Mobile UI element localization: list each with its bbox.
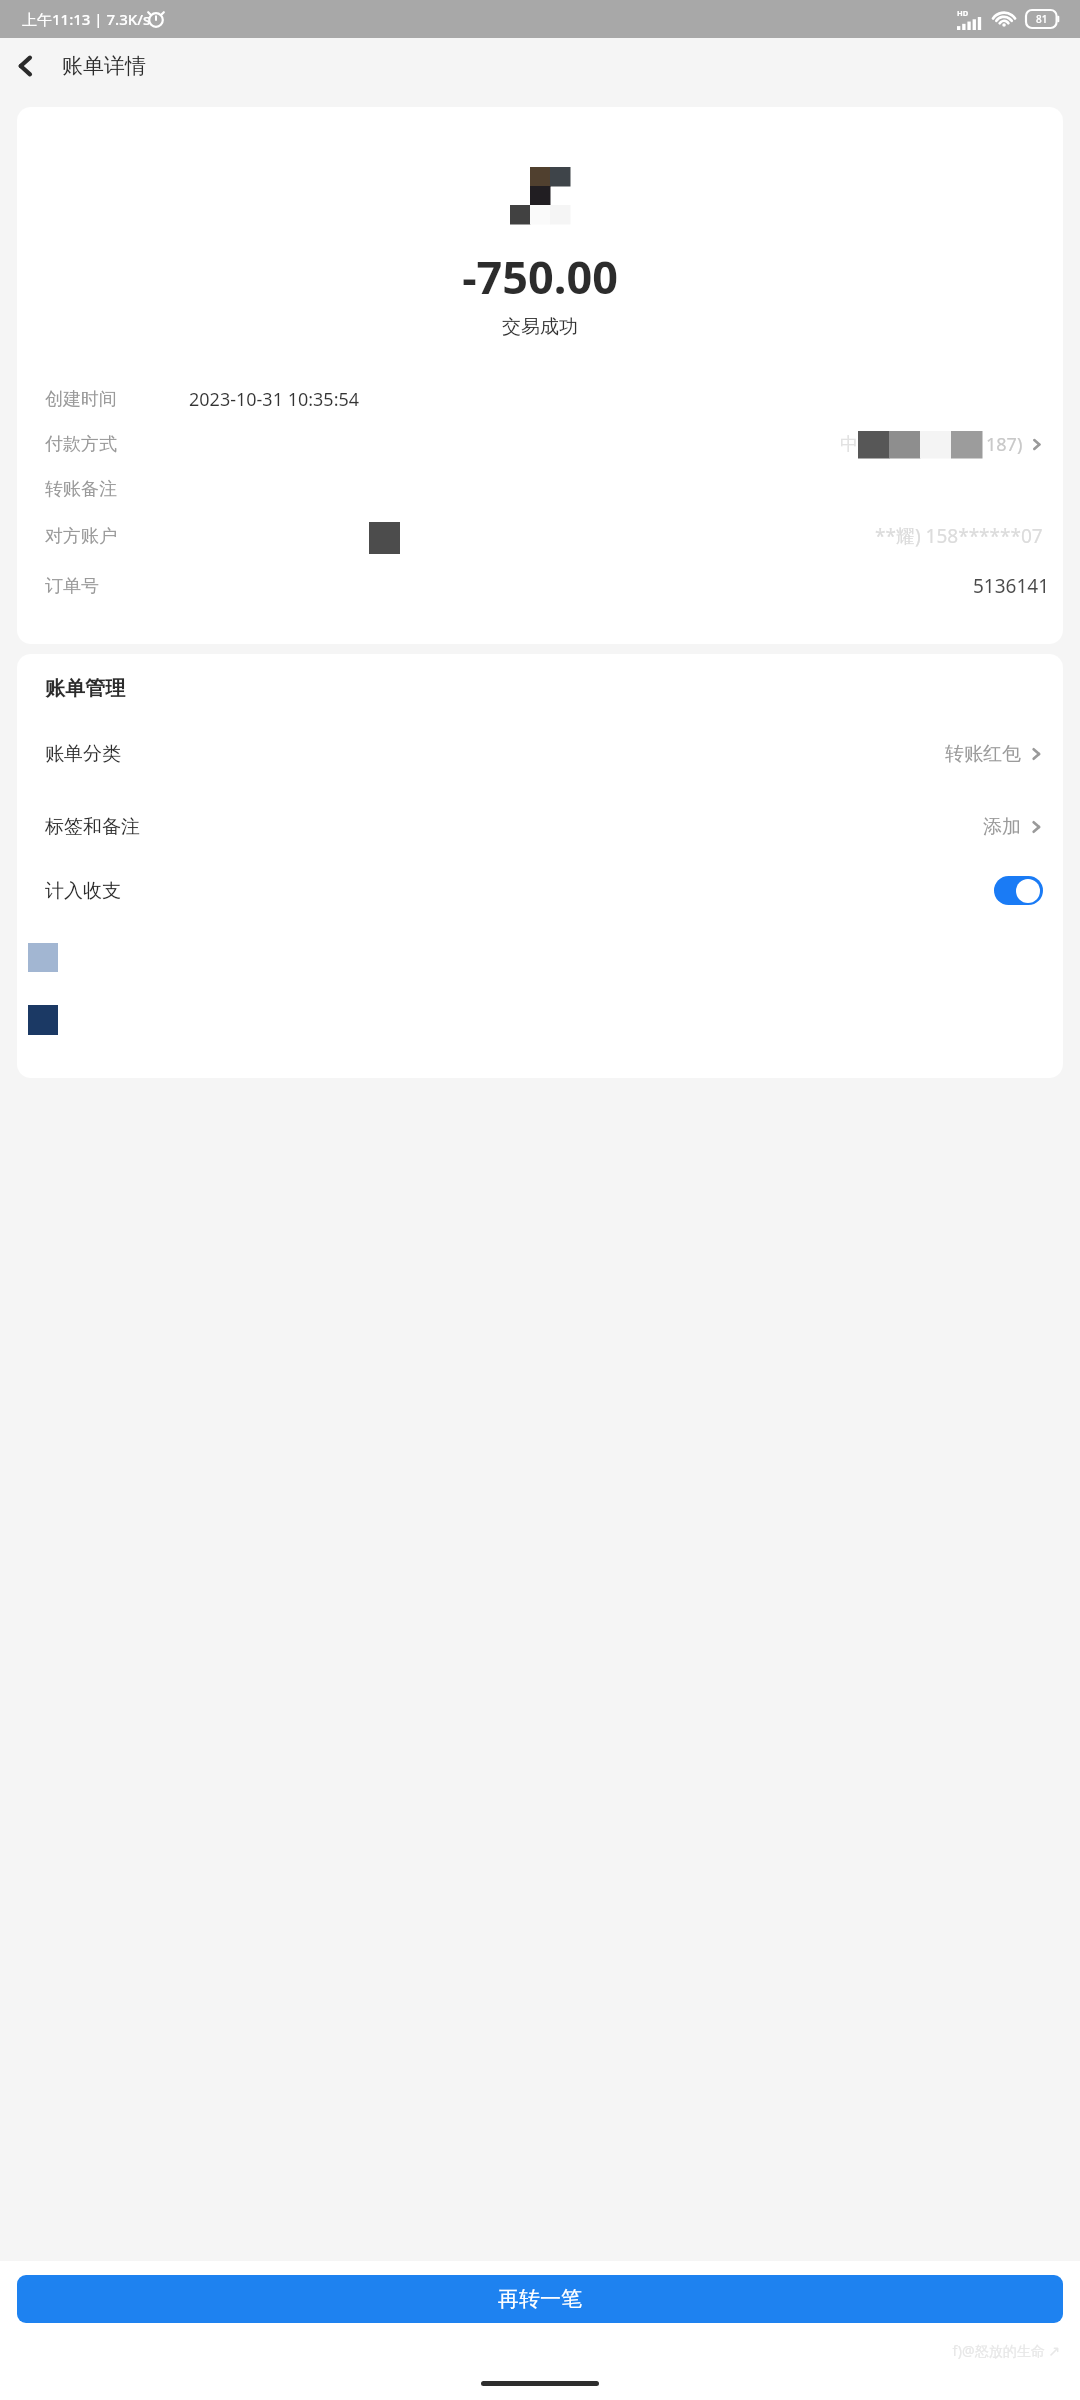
staticText: HD <box>957 8 969 18</box>
other: 计入收支 开关 <box>994 876 1043 905</box>
button[interactable]: 账单分类 <box>17 717 1063 790</box>
staticText: 187) <box>986 432 1023 457</box>
staticText: 创建时间 <box>45 388 117 411</box>
staticText: 订单号 <box>45 575 99 598</box>
staticText: -750.00 <box>17 246 1063 307</box>
button[interactable]: 付款方式 <box>17 422 1063 467</box>
staticText: 账单分类 <box>45 742 121 766</box>
button[interactable]: 标签和备注 <box>17 790 1063 863</box>
staticText: 计入收支 <box>45 879 121 903</box>
staticText: 再转一笔 <box>498 2286 582 2312</box>
button[interactable]: Back <box>0 40 52 92</box>
staticText: 标签和备注 <box>45 815 140 839</box>
staticText: 5136141 <box>973 573 1050 599</box>
staticText: 81 <box>1036 12 1048 26</box>
staticText: 转账红包 <box>945 742 1021 766</box>
staticText: 中 <box>840 433 858 456</box>
staticText: 付款方式 <box>45 433 117 456</box>
staticText: **耀) 158******07 <box>875 523 1043 549</box>
staticText: 转账备注 <box>45 478 117 501</box>
staticText: 添加 <box>983 815 1021 839</box>
staticText: 上午11:13 | 7.3K/s <box>22 9 151 29</box>
staticText: 账单管理 <box>45 676 125 701</box>
button[interactable]: 计入收支 <box>17 863 1063 918</box>
staticText: 2023-10-31 10:35:54 <box>189 387 360 412</box>
button[interactable]: 再转一笔 <box>17 2275 1063 2323</box>
staticText: 对方账户 <box>45 525 117 548</box>
staticText: 账单详情 <box>62 53 146 79</box>
staticText: 交易成功 <box>17 315 1063 339</box>
staticText: f)@怒放的生命 ↗ <box>0 2341 1060 2360</box>
